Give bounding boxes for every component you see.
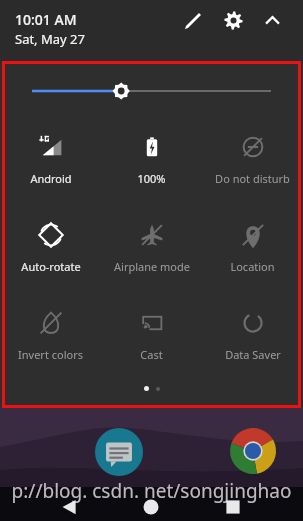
staticText: Invert colors	[18, 347, 83, 362]
button[interactable]: 100%	[101, 120, 202, 208]
button[interactable]: Recent apps	[219, 493, 247, 521]
staticText: Cast	[140, 347, 163, 362]
button[interactable]: Settings	[220, 7, 247, 34]
button[interactable]: Location	[202, 208, 303, 296]
staticText: 10:01 AM	[15, 10, 77, 29]
button[interactable]: Edit	[179, 7, 206, 34]
button[interactable]: Data Saver	[202, 296, 303, 384]
staticText: Android	[30, 171, 72, 186]
button[interactable]: Chrome	[230, 428, 276, 474]
button[interactable]: Do not disturb	[202, 120, 303, 208]
button[interactable]: Home	[137, 493, 165, 521]
button[interactable]: Android	[0, 120, 101, 208]
staticText: Data Saver	[225, 347, 281, 362]
button[interactable]: Collapse	[259, 7, 286, 34]
button[interactable]: Auto-rotate	[0, 208, 101, 296]
button[interactable]: Back	[56, 493, 84, 521]
button[interactable]: Cast	[101, 296, 202, 384]
button[interactable]: Brightness	[0, 62, 303, 120]
button[interactable]: Invert colors	[0, 296, 101, 384]
staticText: p://blog. csdn. net/songjinghao	[0, 478, 303, 504]
staticText: Airplane mode	[114, 259, 190, 274]
staticText: Location	[230, 259, 275, 274]
staticText: 100%	[137, 171, 166, 186]
staticText: Do not disturb	[215, 171, 290, 186]
staticText: Auto-rotate	[21, 259, 81, 274]
button[interactable]: Messages	[95, 428, 143, 476]
button[interactable]: Airplane mode	[101, 208, 202, 296]
staticText: Sat, May 27	[15, 30, 85, 48]
